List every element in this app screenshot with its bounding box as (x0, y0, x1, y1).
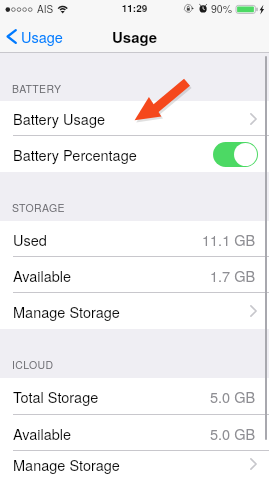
staticText: Manage Storage (13, 454, 120, 475)
staticText: Battery Percentage (13, 144, 137, 165)
button[interactable]: Used (0, 221, 269, 257)
other: Orientation lock and alarm (183, 2, 209, 16)
staticText: 1.7 GB (210, 265, 256, 286)
staticText: Available (13, 423, 72, 444)
staticText: Used (13, 229, 47, 250)
staticText: 11.1 GB (202, 229, 256, 250)
other: Wi-Fi (56, 3, 69, 14)
staticText: Usage (21, 26, 63, 47)
button[interactable]: Battery Percentage toggle, on (213, 142, 258, 167)
staticText: 90% (211, 1, 233, 16)
staticText: Usage (112, 26, 158, 47)
staticText: AIS (37, 2, 54, 16)
button[interactable]: Available (0, 257, 269, 293)
button[interactable]: Available (0, 415, 269, 451)
staticText: Battery Usage (13, 108, 106, 129)
staticText: STORAGE (12, 200, 65, 215)
button[interactable]: Battery Usage (0, 101, 269, 136)
button[interactable]: Manage Storage (0, 293, 269, 329)
button[interactable]: Manage Storage (0, 451, 269, 477)
button[interactable]: Battery Percentage (0, 136, 269, 172)
button[interactable]: Usage (0, 26, 71, 47)
staticText: ICLOUD (12, 357, 54, 372)
staticText: 11:29 (0, 1, 269, 15)
staticText: Available (13, 265, 72, 286)
staticText: 5.0 GB (210, 423, 256, 444)
staticText: Manage Storage (13, 301, 120, 322)
staticText: 5.0 GB (210, 386, 256, 407)
staticText: BATTERY (12, 81, 62, 96)
button[interactable]: Total Storage (0, 378, 269, 415)
staticText: Total Storage (13, 386, 99, 407)
